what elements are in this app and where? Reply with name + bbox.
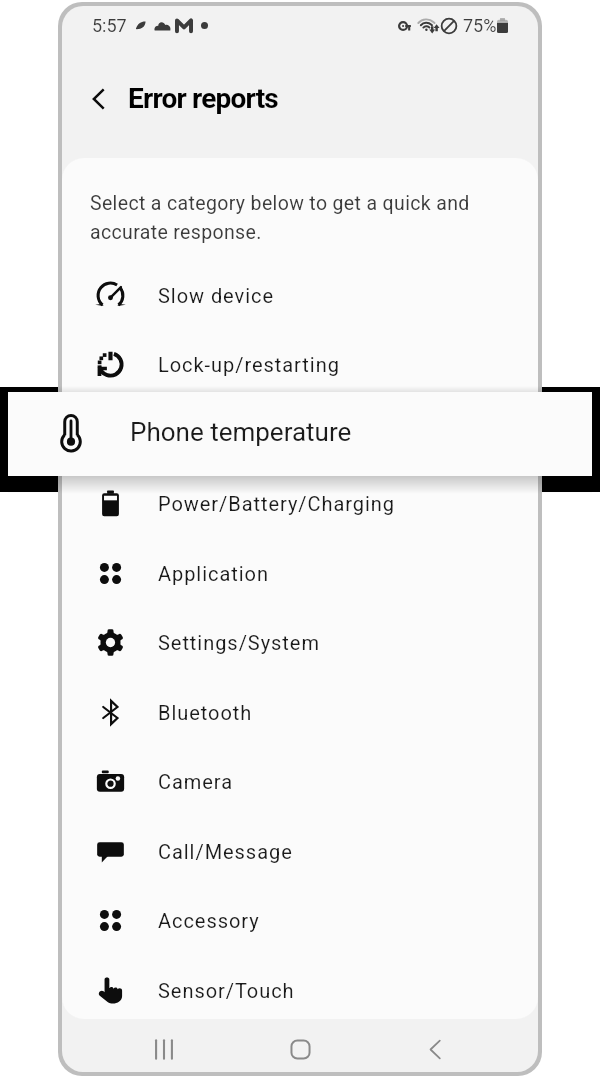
- staticText: Sensor/Touch: [158, 979, 295, 1002]
- button[interactable]: Home: [276, 1027, 324, 1072]
- staticText: Camera: [158, 770, 234, 793]
- staticText: Error reports: [128, 82, 278, 115]
- staticText: Power/Battery/Charging: [158, 492, 396, 515]
- staticText: Phone temperature: [130, 417, 352, 447]
- button[interactable]: Sensor/Touch: [62, 955, 538, 1019]
- button[interactable]: Call/Message: [62, 816, 538, 886]
- button[interactable]: Phone temperature: [62, 399, 538, 469]
- button[interactable]: Settings/System: [62, 607, 538, 677]
- button[interactable]: Recent apps: [140, 1027, 188, 1072]
- staticText: 5:57: [92, 15, 127, 36]
- staticText: Lock-up/restarting: [158, 353, 340, 376]
- button[interactable]: Bluetooth: [62, 677, 538, 747]
- button[interactable]: Back: [76, 77, 120, 121]
- staticText: Bluetooth: [158, 701, 253, 724]
- button[interactable]: Back: [411, 1027, 459, 1072]
- button[interactable]: Phone temperature: [8, 392, 592, 476]
- staticText: Settings/System: [158, 631, 320, 654]
- staticText: Slow device: [158, 284, 274, 307]
- button[interactable]: Application: [62, 538, 538, 608]
- button[interactable]: Lock-up/restarting: [62, 329, 538, 399]
- staticText: Select a category below to get a quick a…: [90, 192, 470, 244]
- button[interactable]: Camera: [62, 746, 538, 816]
- staticText: Accessory: [158, 909, 260, 932]
- button[interactable]: Slow device: [62, 260, 538, 330]
- button[interactable]: Accessory: [62, 885, 538, 955]
- staticText: Call/Message: [158, 840, 293, 863]
- staticText: Phone temperature: [158, 423, 345, 446]
- button[interactable]: Power/Battery/Charging: [62, 468, 538, 538]
- staticText: 75%: [463, 15, 497, 36]
- staticText: Application: [158, 562, 269, 585]
